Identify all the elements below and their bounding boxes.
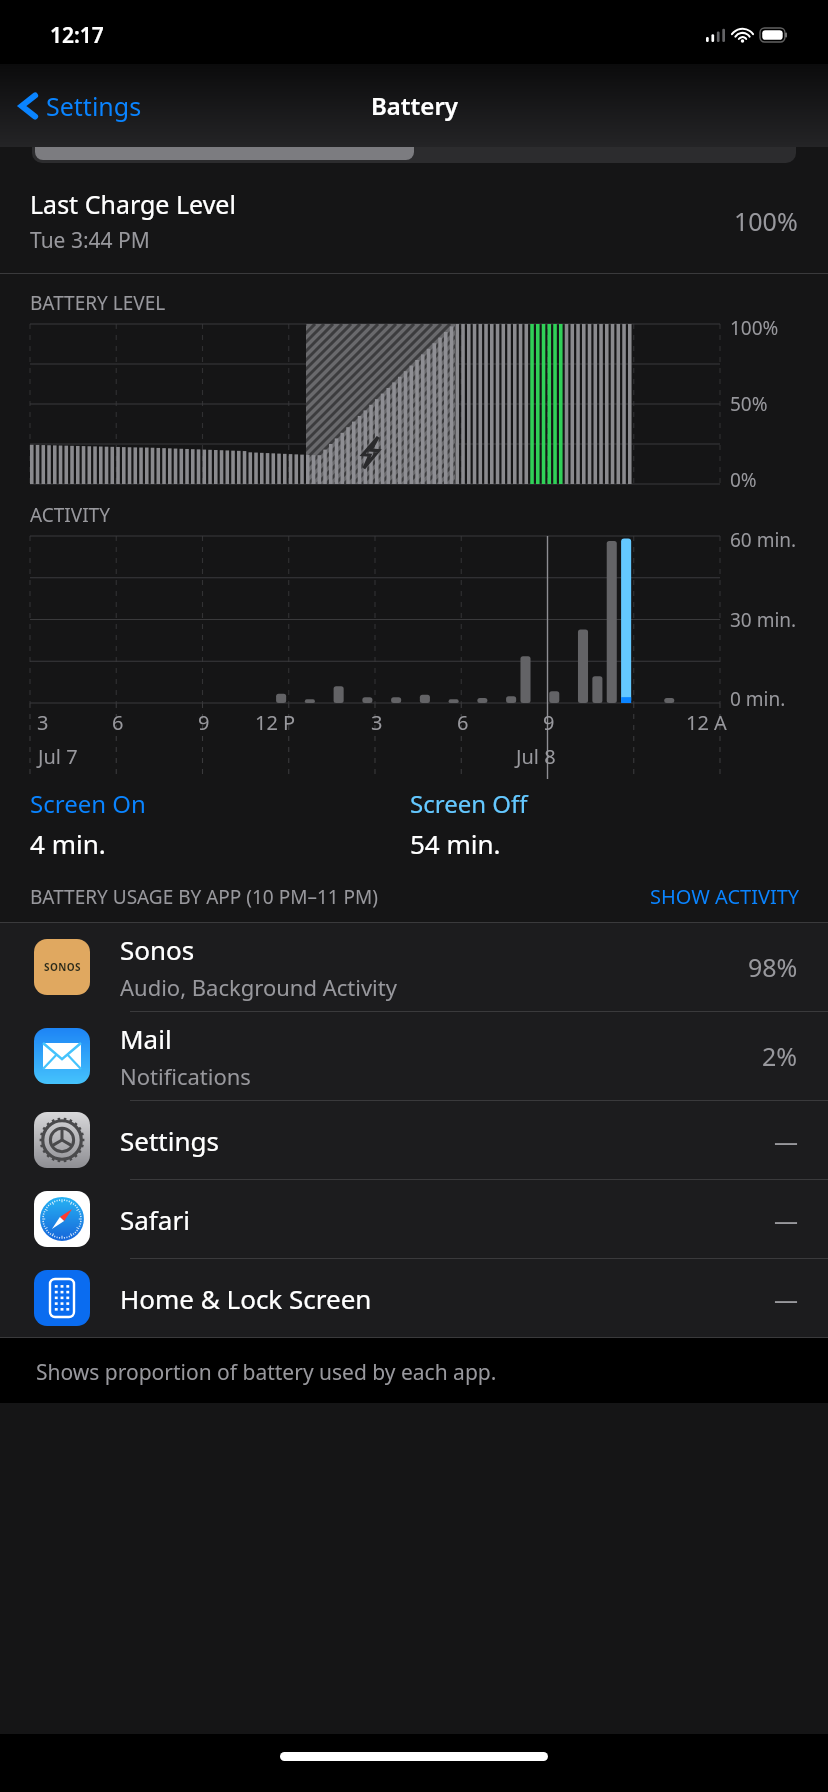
staticText: 100% — [734, 204, 798, 238]
staticText: Shows proportion of battery used by each… — [36, 1358, 497, 1387]
staticText: Battery — [371, 89, 458, 122]
button[interactable]: Safari — [0, 1180, 828, 1258]
staticText: 60 min. — [730, 527, 797, 553]
button[interactable]: Settings — [0, 1101, 828, 1179]
staticText: ACTIVITY — [30, 502, 110, 528]
staticText: 12:17 — [50, 21, 104, 50]
button[interactable]: SHOW ACTIVITY — [650, 883, 800, 910]
staticText: Last Charge Level — [30, 187, 236, 221]
staticText: Jul 8 — [516, 743, 556, 770]
button[interactable]: Home & Lock Screen — [0, 1259, 828, 1337]
staticText: Audio, Background Activity — [120, 972, 397, 1002]
staticText: 100% — [730, 315, 779, 341]
staticText: — — [774, 1203, 798, 1236]
staticText: 12 P — [255, 709, 296, 736]
staticText: 3 — [371, 709, 383, 736]
staticText: 4 min. — [30, 826, 106, 861]
staticText: 9 — [543, 709, 555, 736]
staticText: 0 min. — [730, 686, 786, 712]
staticText: Settings — [46, 89, 142, 123]
staticText: Tue 3:44 PM — [30, 226, 150, 255]
staticText: 50% — [730, 391, 768, 417]
staticText: SHOW ACTIVITY — [650, 883, 800, 910]
staticText: Home & Lock Screen — [120, 1281, 372, 1316]
staticText: Safari — [120, 1202, 190, 1237]
button[interactable]: Settings — [18, 89, 142, 123]
staticText: BATTERY USAGE BY APP (10 PM–11 PM) — [30, 884, 650, 910]
staticText: 98% — [748, 950, 798, 984]
staticText: Screen Off — [410, 787, 528, 820]
staticText: 3 — [37, 709, 38, 736]
staticText: 9 — [198, 709, 210, 736]
button[interactable]: SONOS — [0, 923, 828, 1011]
staticText: 6 — [457, 709, 469, 736]
staticText: 0% — [730, 467, 757, 493]
staticText: Mail — [120, 1021, 172, 1056]
staticText: 30 min. — [730, 607, 797, 633]
staticText: 12 A — [686, 709, 727, 736]
button[interactable]: Mail — [0, 1012, 828, 1100]
staticText: Jul 7 — [38, 743, 78, 770]
staticText: Notifications — [120, 1061, 251, 1091]
staticText: Screen On — [30, 787, 146, 820]
staticText: — — [774, 1282, 798, 1315]
staticText: BATTERY LEVEL — [30, 290, 166, 316]
staticText: — — [774, 1124, 798, 1157]
staticText: Sonos — [120, 932, 195, 967]
staticText: 54 min. — [410, 826, 501, 861]
staticText: Settings — [120, 1123, 219, 1158]
button[interactable] — [32, 147, 796, 163]
staticText: 6 — [112, 709, 124, 736]
staticText: SONOS — [44, 960, 81, 974]
staticText: 2% — [762, 1039, 798, 1073]
